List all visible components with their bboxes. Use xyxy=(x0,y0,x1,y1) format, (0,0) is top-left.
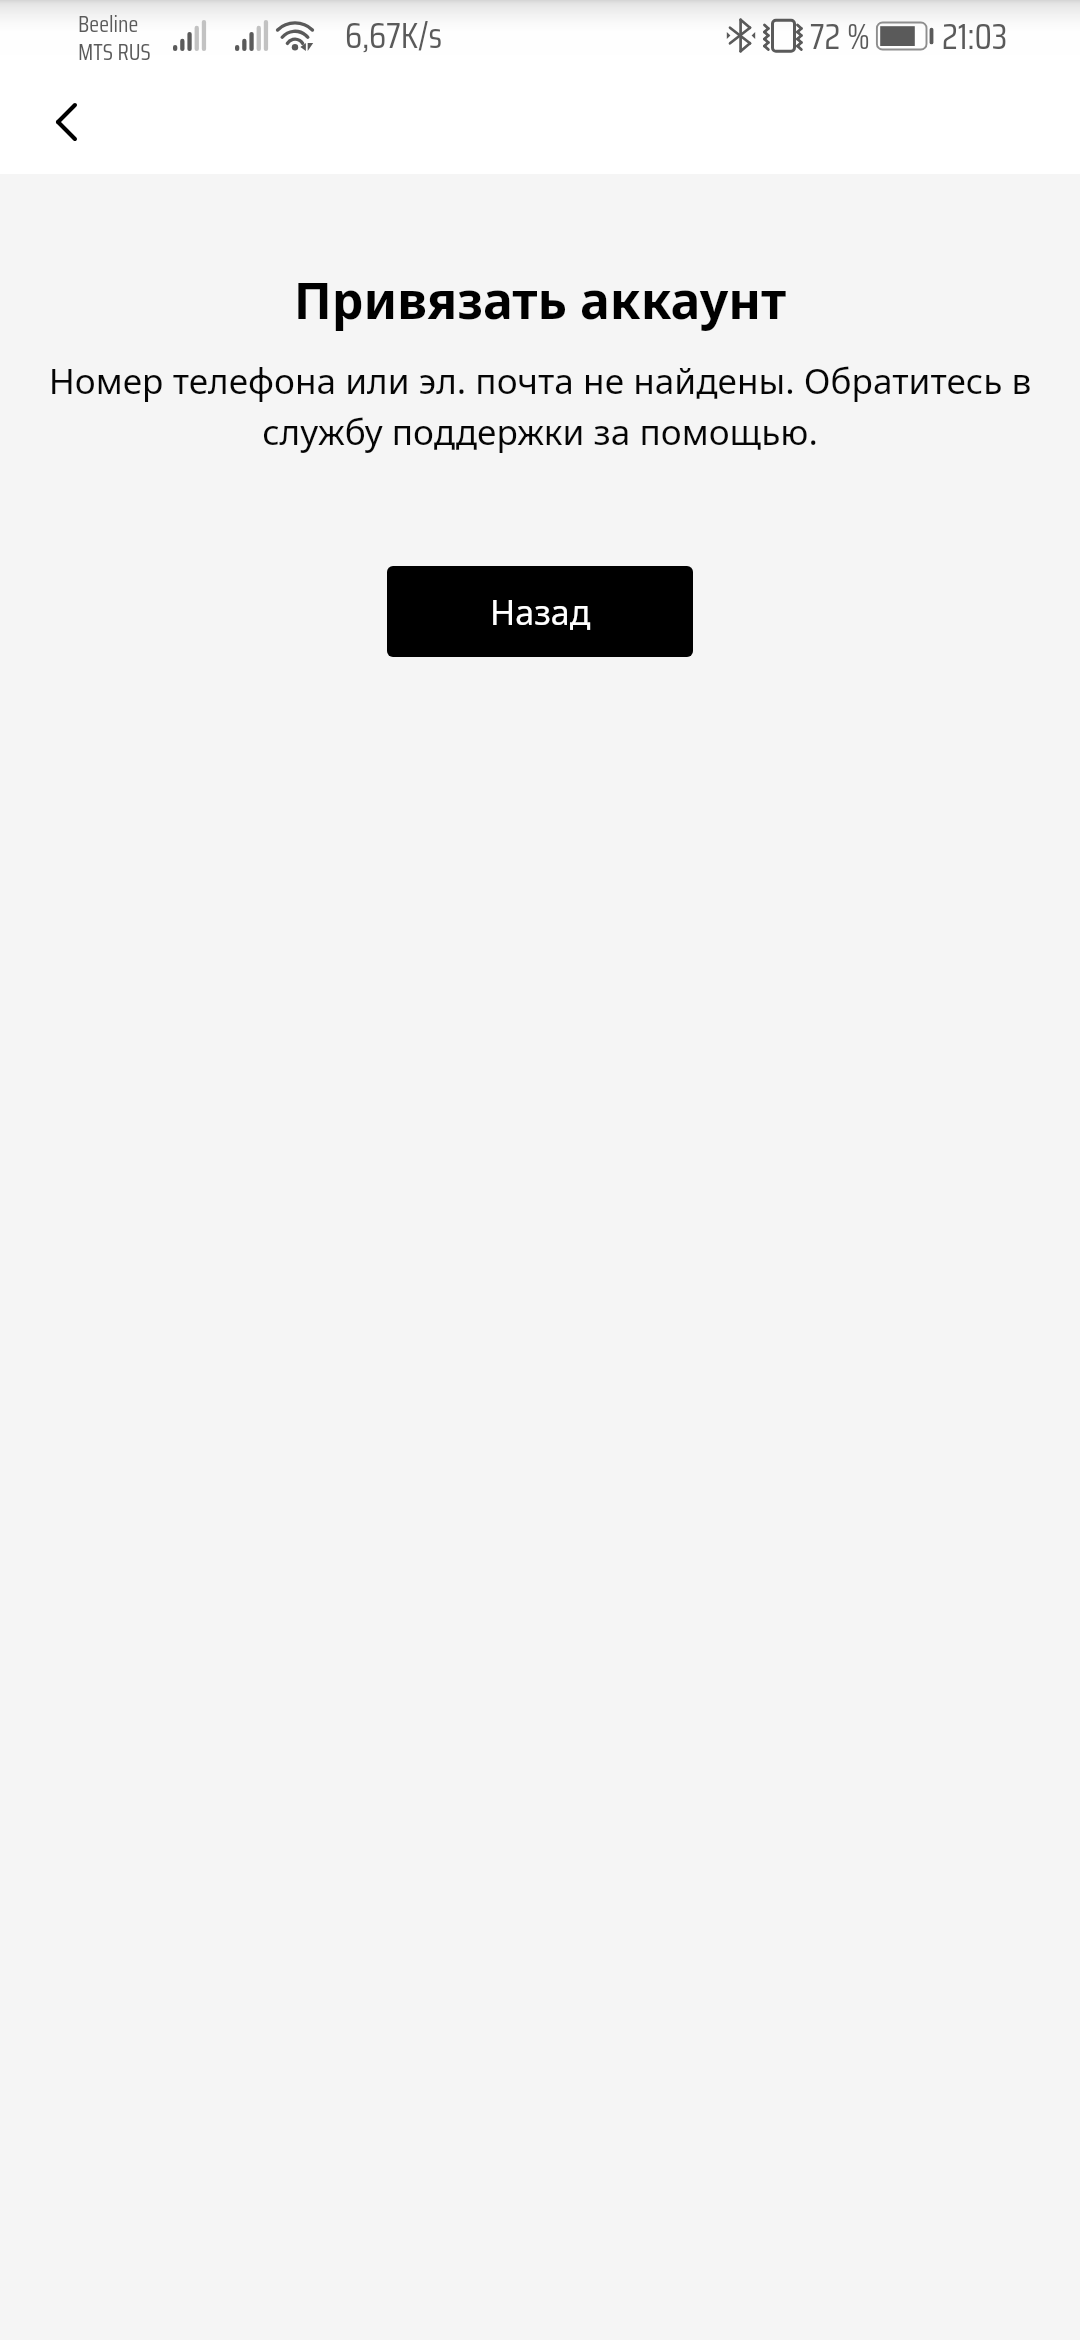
staticText: Beeline xyxy=(78,6,139,42)
staticText: 72 % xyxy=(810,8,871,65)
staticText: 6,67K/s xyxy=(345,7,443,64)
staticText: Назад xyxy=(490,589,591,635)
staticText: 21:03 xyxy=(942,8,1008,65)
staticText: Номер телефона или эл. почта не найдены.… xyxy=(40,356,1040,455)
staticText: Привязать аккаунт xyxy=(0,266,1080,334)
staticText: MTS RUS xyxy=(78,34,151,70)
button[interactable]: Back xyxy=(20,78,112,166)
button[interactable]: Назад xyxy=(387,566,693,657)
